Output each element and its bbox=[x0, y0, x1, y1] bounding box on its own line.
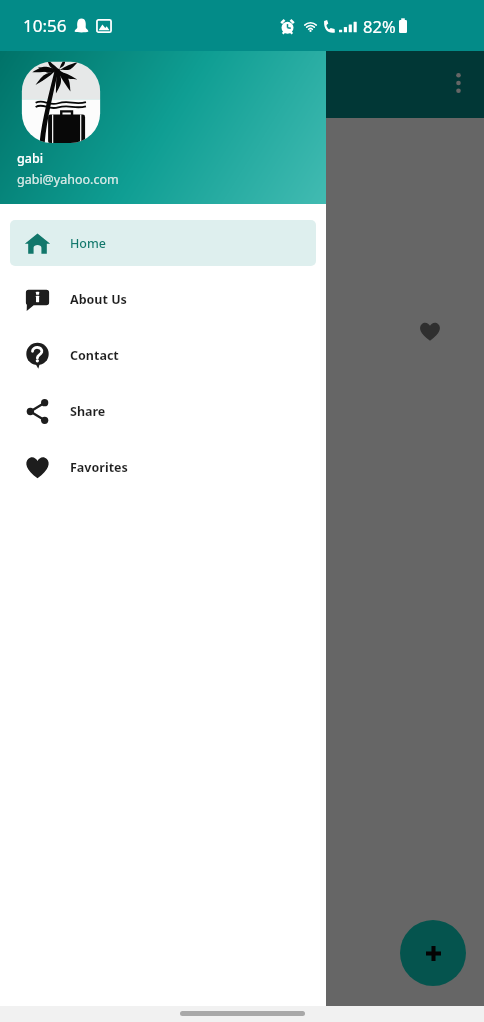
staticText: About Us bbox=[70, 291, 127, 308]
button[interactable]: Contact bbox=[10, 332, 316, 378]
staticText: Favorites bbox=[70, 459, 128, 476]
staticText: gabi@yahoo.com bbox=[17, 171, 119, 188]
staticText: 82% bbox=[363, 15, 396, 37]
staticText: gabi bbox=[17, 150, 44, 167]
staticText: Share bbox=[70, 403, 106, 420]
button[interactable]: Add bbox=[400, 920, 466, 986]
staticText: 10:56 bbox=[23, 14, 67, 37]
staticText: Home bbox=[70, 235, 107, 252]
staticText: Contact bbox=[70, 347, 119, 364]
button[interactable]: More options bbox=[438, 63, 478, 103]
button[interactable]: Home bbox=[10, 220, 316, 266]
button[interactable]: About Us bbox=[10, 276, 316, 322]
button[interactable]: Share bbox=[10, 388, 316, 434]
button[interactable]: Favorites bbox=[10, 444, 316, 490]
